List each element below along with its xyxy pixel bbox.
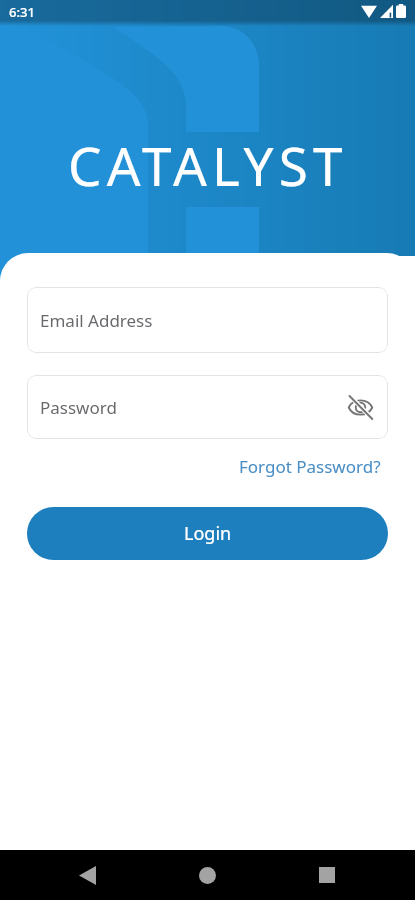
staticText: Email Address	[40, 309, 153, 332]
button[interactable]: Back	[59, 850, 116, 900]
staticText: Login	[184, 521, 232, 546]
button[interactable]: Home	[179, 850, 236, 900]
staticText: CATALYST	[68, 129, 348, 201]
staticText: 6:31	[9, 3, 35, 21]
button[interactable]: Email Address	[27, 287, 388, 353]
button[interactable]: Recents	[298, 850, 355, 900]
button[interactable]: Login	[27, 507, 388, 560]
staticText: Password	[40, 396, 117, 419]
button[interactable]: Forgot Password?	[239, 455, 381, 478]
button[interactable]: Show password	[342, 389, 378, 425]
button[interactable]: Password	[27, 375, 388, 439]
